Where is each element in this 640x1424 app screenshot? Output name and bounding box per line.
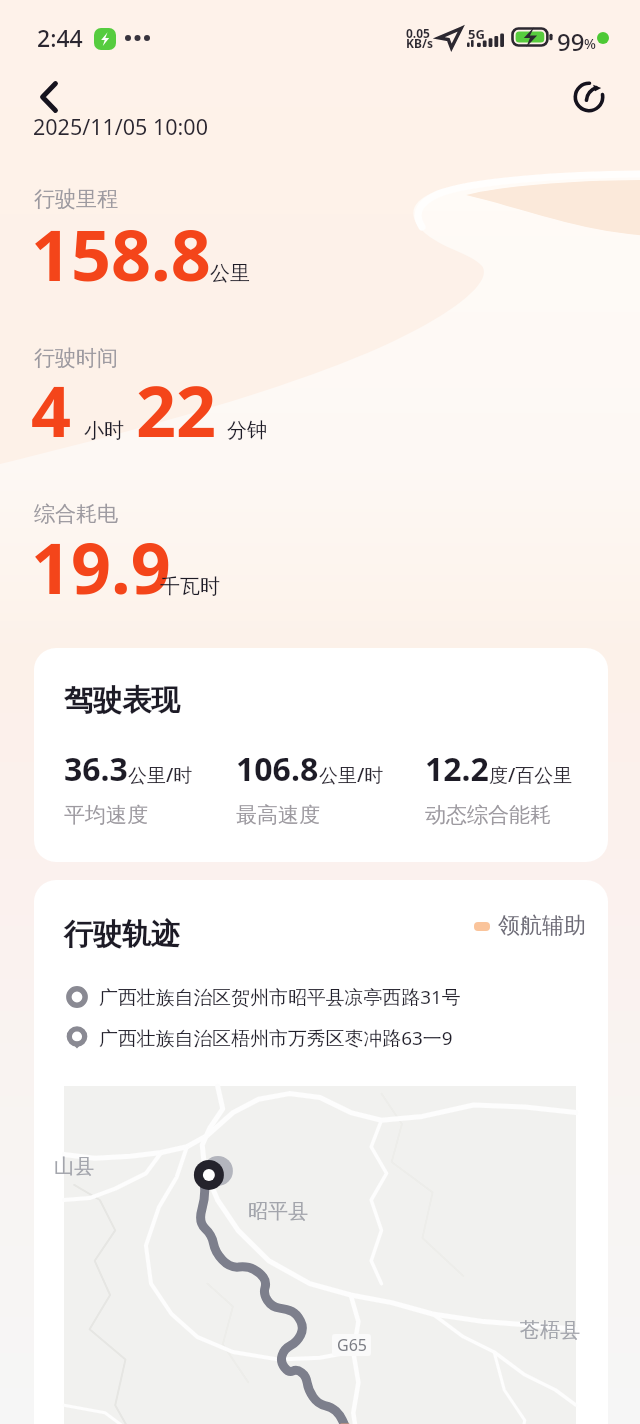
staticText: 2025/11/05 10:00 <box>33 112 208 141</box>
staticText: 广西壮族自治区梧州市万秀区枣冲路63一9 <box>99 1025 453 1051</box>
staticText: 公里 <box>210 261 250 286</box>
staticText: 综合耗电 <box>34 501 118 527</box>
staticText: 22 <box>136 362 217 457</box>
staticText: 动态综合能耗 <box>425 802 551 828</box>
staticText: 行驶里程 <box>34 186 118 212</box>
staticText: 2:44 <box>37 22 83 53</box>
button[interactable]: 驾驶表现 <box>34 648 608 862</box>
staticText: 驾驶表现 <box>64 682 180 719</box>
staticText: 平均速度 <box>64 802 148 828</box>
button[interactable]: Back <box>22 70 76 124</box>
staticText: 0.05 <box>406 25 430 41</box>
staticText: G65 <box>337 1334 367 1356</box>
staticText: 广西壮族自治区贺州市昭平县凉亭西路31号 <box>99 984 461 1010</box>
staticText: 158.8 <box>31 206 211 301</box>
staticText: 分钟 <box>227 418 267 443</box>
staticText: 5G <box>468 25 485 43</box>
staticText: 99 <box>557 25 585 58</box>
staticText: KB/s <box>406 35 433 51</box>
staticText: % <box>584 34 596 53</box>
staticText: 4 <box>31 362 72 457</box>
staticText: 千瓦时 <box>160 574 220 599</box>
button[interactable]: 领航辅助 <box>474 912 586 940</box>
staticText: 苍梧县 <box>520 1318 580 1343</box>
staticText: 公里/时 <box>319 762 384 788</box>
staticText: 山县 <box>54 1154 94 1179</box>
staticText: 12.2 <box>425 747 489 791</box>
button[interactable]: Refresh <box>562 70 616 124</box>
staticText: 昭平县 <box>248 1199 308 1224</box>
staticText: 公里/时 <box>128 762 193 788</box>
staticText: 小时 <box>84 418 124 443</box>
staticText: 36.3 <box>64 747 128 791</box>
staticText: 行驶时间 <box>34 345 118 371</box>
staticText: 19.9 <box>31 519 171 614</box>
staticText: 领航辅助 <box>498 912 586 940</box>
staticText: 度/百公里 <box>489 762 573 788</box>
staticText: 行驶轨迹 <box>64 916 180 953</box>
staticText: 最高速度 <box>236 802 320 828</box>
staticText: 106.8 <box>236 747 319 791</box>
